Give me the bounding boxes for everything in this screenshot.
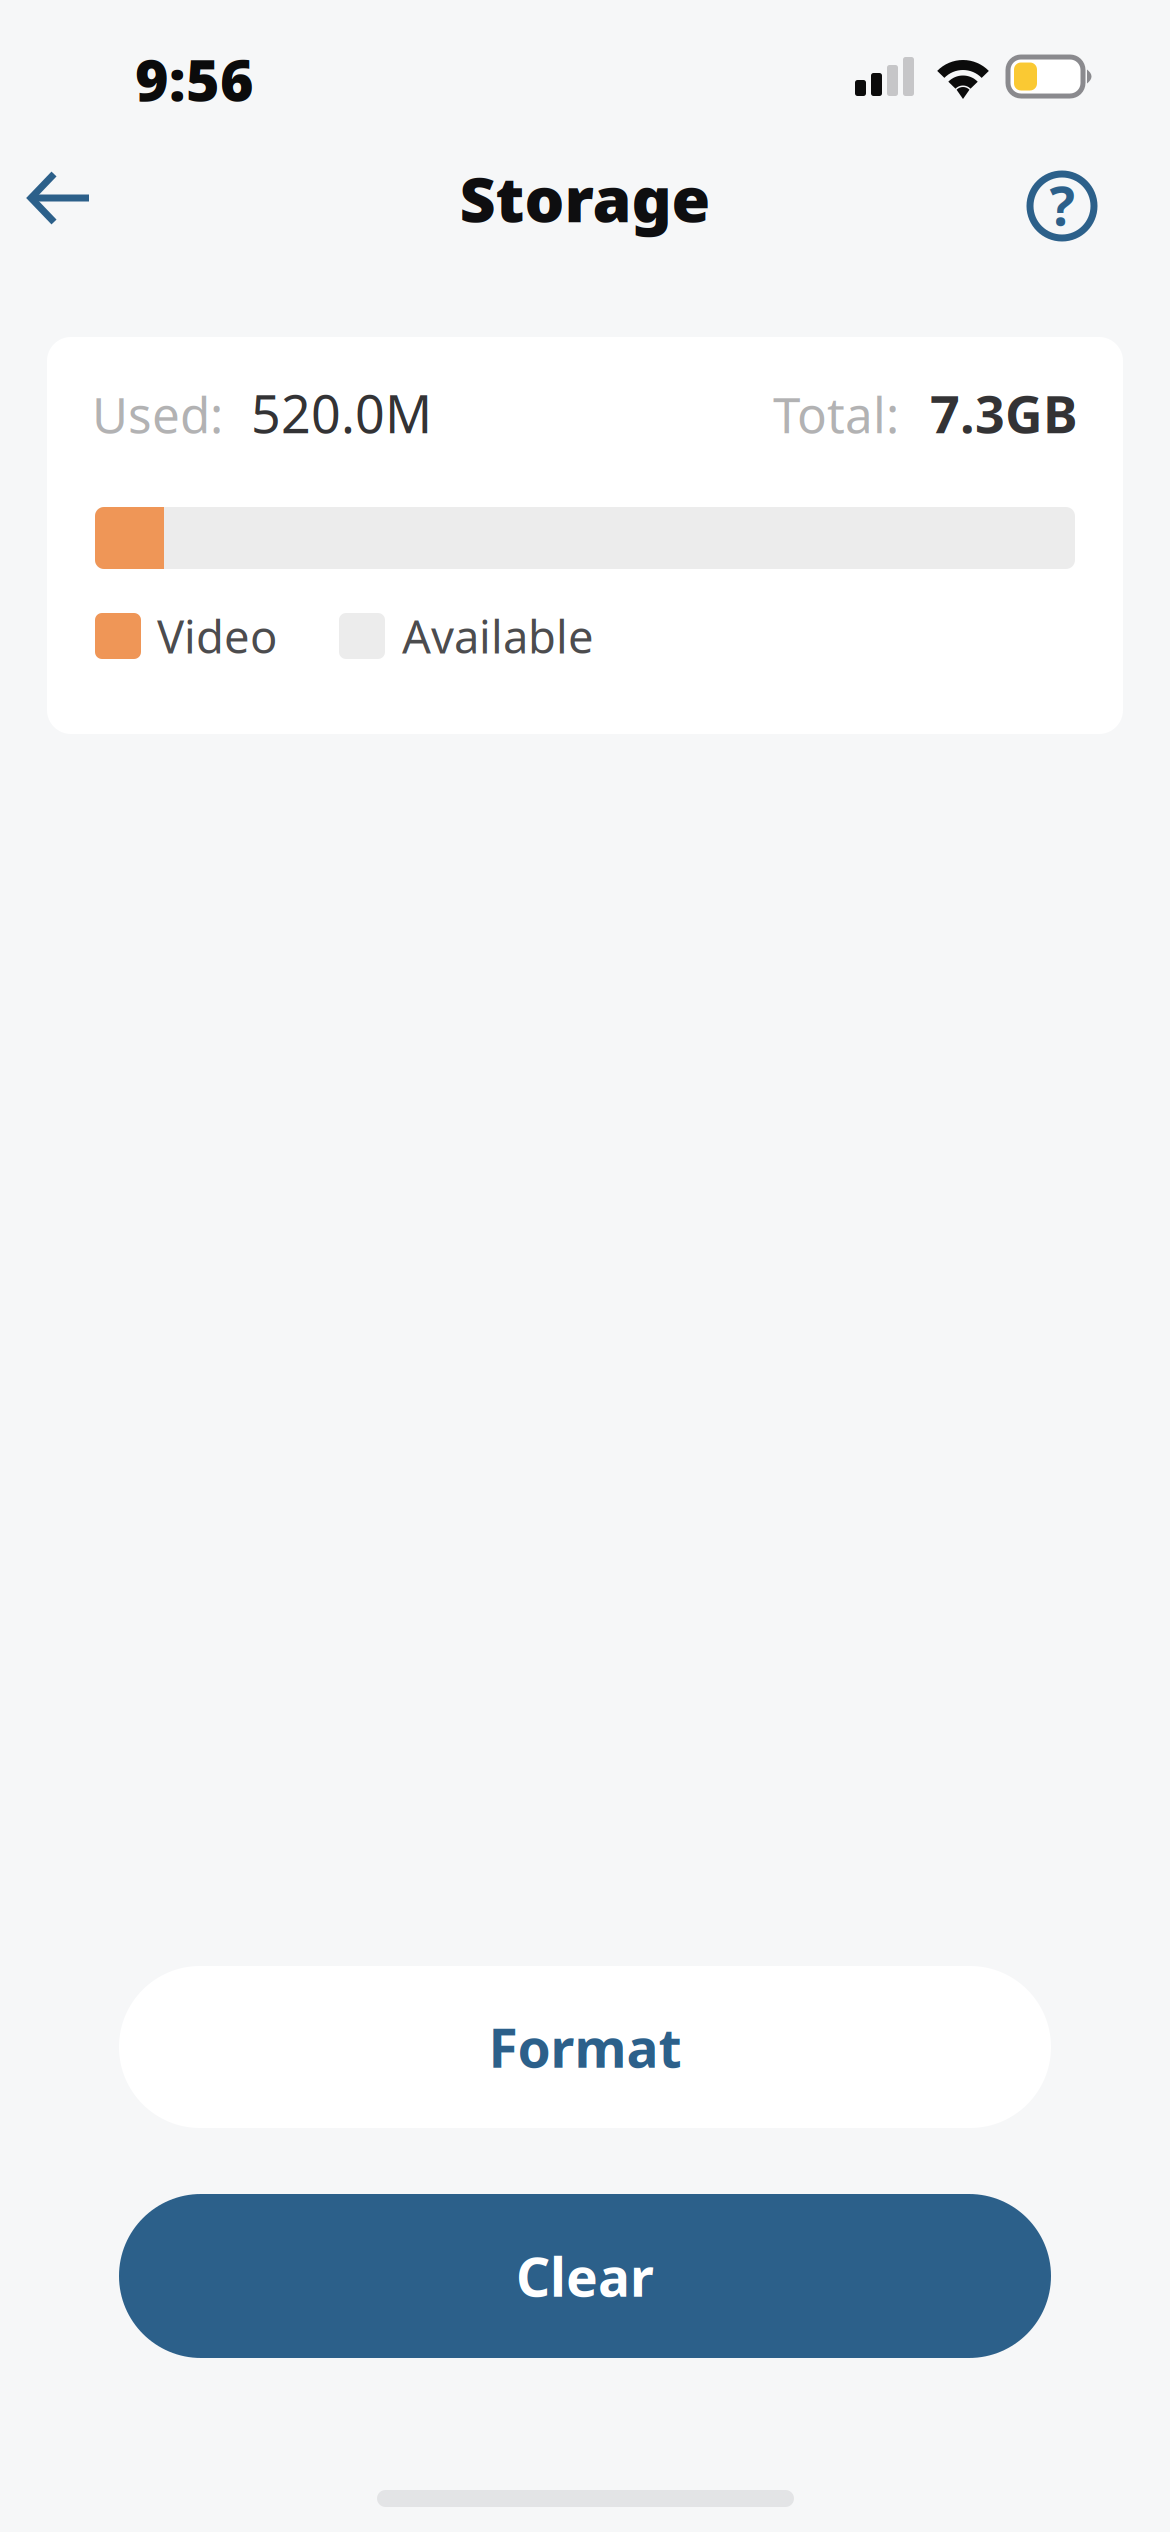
staticText: 9:56 <box>135 41 254 117</box>
staticText: ? <box>1049 170 1074 240</box>
button[interactable]: Back <box>5 142 115 254</box>
staticText: 520.0M <box>251 378 432 448</box>
button[interactable]: Help <box>1007 151 1117 261</box>
button[interactable]: Format <box>119 1966 1051 2128</box>
staticText: Format <box>488 2012 681 2082</box>
staticText: Total: <box>773 381 899 447</box>
staticText: Storage <box>459 156 710 240</box>
staticText: Video <box>157 606 277 666</box>
staticText: 7.3GB <box>930 378 1078 448</box>
button[interactable]: Clear <box>119 2194 1051 2358</box>
staticText: Used: <box>92 381 223 447</box>
staticText: Available <box>402 606 594 666</box>
staticText: Clear <box>516 2241 654 2311</box>
